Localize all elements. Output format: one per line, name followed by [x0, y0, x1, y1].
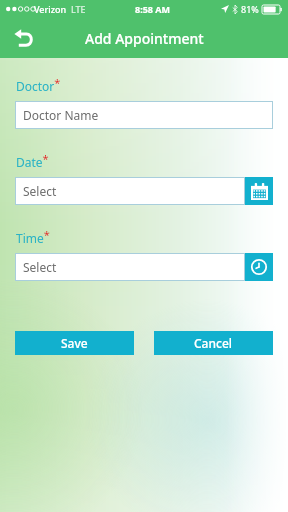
staticText: Select	[23, 259, 57, 275]
button[interactable]: Cancel	[154, 331, 273, 355]
button[interactable]: Back	[9, 23, 39, 53]
button[interactable]: Pick date	[245, 177, 273, 205]
staticText: Add Appointment	[85, 29, 204, 48]
button[interactable]: Save	[15, 331, 134, 355]
staticText: Save	[61, 335, 88, 351]
button[interactable]: Select	[15, 253, 245, 281]
staticText: LTE	[71, 3, 86, 15]
staticText: Verizon	[34, 3, 67, 15]
button[interactable]: Select	[15, 177, 245, 205]
staticText: Date*	[16, 151, 49, 171]
button[interactable]: Pick time	[245, 253, 273, 281]
staticText: 8:58 AM	[135, 3, 171, 15]
staticText: 81%	[241, 3, 259, 15]
button[interactable]: Doctor Name	[15, 101, 273, 129]
staticText: Doctor*	[16, 75, 61, 95]
staticText: Select	[23, 183, 57, 199]
staticText: Time*	[16, 227, 50, 247]
staticText: Cancel	[194, 335, 233, 351]
staticText: Doctor Name	[23, 107, 99, 123]
